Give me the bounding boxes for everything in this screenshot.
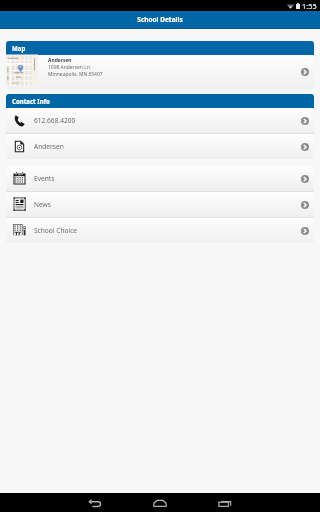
other: Open [301, 175, 309, 183]
staticText: School Choice [34, 226, 78, 235]
button[interactable]: Recents [209, 493, 241, 512]
button[interactable]: Events [6, 166, 314, 191]
other: Open [301, 68, 309, 76]
staticText: School Details [137, 15, 183, 24]
staticText: 1:55 [302, 1, 317, 11]
button[interactable]: Home [144, 493, 176, 512]
button[interactable]: Back [79, 493, 111, 512]
staticText: Andersen [48, 57, 72, 64]
staticText: Events [34, 174, 55, 183]
button[interactable]: News [6, 192, 314, 217]
button[interactable]: School Choice [6, 218, 314, 243]
staticText: Contact Info [12, 97, 50, 105]
staticText: News [34, 200, 51, 209]
other: Open [301, 143, 309, 151]
other: Open [301, 117, 309, 125]
button[interactable]: Andersen [6, 134, 314, 159]
staticText: 612.668.4200 [34, 116, 76, 125]
staticText: Minneapolis, MN 55407 [48, 71, 103, 78]
staticText: 1098 Andersen Ln [48, 64, 90, 71]
staticText: Map [12, 44, 26, 52]
other: Open [301, 227, 309, 235]
other: Open [301, 201, 309, 209]
staticText: Andersen [34, 142, 64, 151]
button[interactable]: Andersen [6, 55, 314, 89]
button[interactable]: 612.668.4200 [6, 108, 314, 133]
